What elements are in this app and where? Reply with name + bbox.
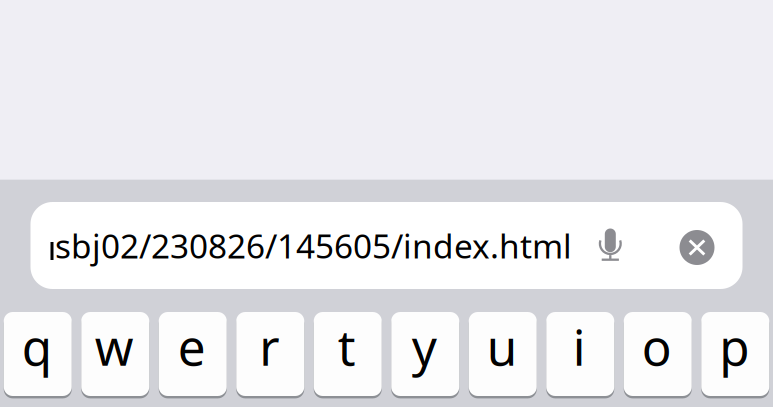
button[interactable]: w [81, 310, 149, 398]
staticText: r [259, 314, 279, 379]
staticText: i [573, 314, 586, 379]
button[interactable]: e [159, 310, 227, 398]
button[interactable]: i [546, 310, 614, 398]
staticText: y [412, 314, 437, 379]
button[interactable]: r [236, 310, 304, 398]
staticText: w [95, 314, 134, 379]
button[interactable]: y [391, 310, 459, 398]
staticText: sbj02/230826/145605/index.html [55, 223, 572, 268]
button[interactable]: Voice search [600, 229, 624, 262]
staticText: t [338, 314, 356, 379]
button[interactable]: t [314, 310, 382, 398]
button[interactable]: Clear text [682, 228, 717, 263]
staticText: u [487, 314, 517, 379]
button[interactable]: q [4, 310, 72, 398]
button[interactable]: o [624, 310, 692, 398]
button[interactable]: u [469, 310, 537, 398]
button[interactable]: Address bar [50, 223, 572, 268]
staticText: e [178, 314, 206, 379]
staticText: o [642, 314, 672, 379]
staticText: q [22, 314, 52, 379]
button[interactable]: p [701, 310, 769, 398]
staticText: p [719, 314, 749, 379]
